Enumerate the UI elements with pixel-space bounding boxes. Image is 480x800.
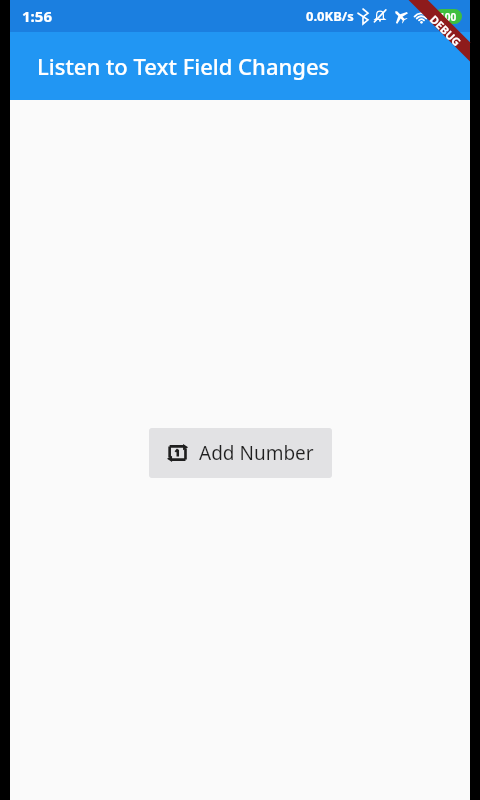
staticText: Add Number [199,440,314,466]
staticText: 0.0KB/s [306,7,354,25]
staticText: 100 [439,10,457,24]
staticText: 1:56 [22,6,52,26]
staticText: Listen to Text Field Changes [37,51,330,81]
button[interactable]: Repeat one [149,428,332,478]
staticText: DEBUG [428,12,464,48]
other: Repeat one [167,442,189,464]
